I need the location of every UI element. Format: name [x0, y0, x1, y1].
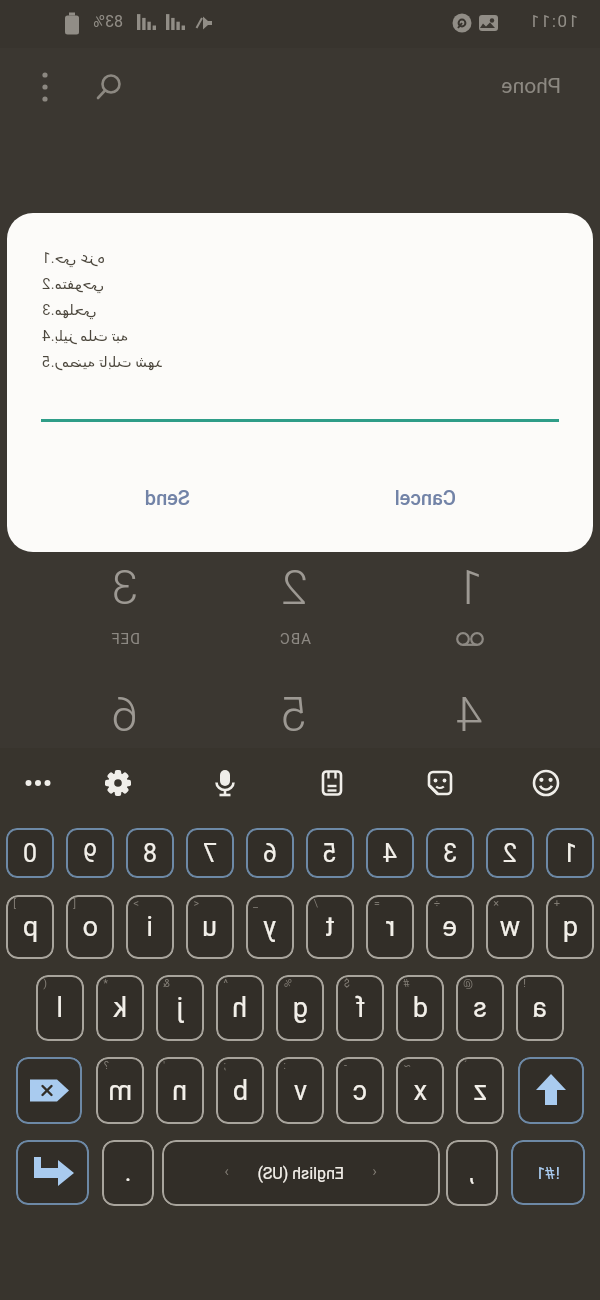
staticText: *: [103, 977, 108, 990]
staticText: 9: [82, 839, 97, 868]
button[interactable]: 3: [426, 828, 474, 878]
button[interactable]: 4: [366, 828, 414, 878]
staticText: m: [108, 1075, 132, 1107]
staticText: 4: [456, 686, 483, 742]
button[interactable]: 0: [6, 828, 54, 878]
staticText: DEF: [110, 630, 140, 648]
button[interactable]: 5: [306, 828, 354, 878]
staticText: 6: [262, 839, 277, 868]
button[interactable]: h: [216, 975, 264, 1041]
staticText: b: [232, 1075, 248, 1107]
staticText: .: [124, 1159, 131, 1187]
button[interactable]: !#1: [511, 1140, 585, 1205]
staticText: ]: [13, 897, 16, 910]
button[interactable]: j: [156, 975, 204, 1041]
staticText: 7: [202, 839, 217, 868]
button[interactable]: English (US): [162, 1140, 440, 1206]
button[interactable]: 1: [546, 828, 594, 878]
staticText: !#1: [535, 1163, 560, 1183]
button[interactable]: [14, 759, 62, 807]
staticText: ÷: [433, 897, 440, 910]
button[interactable]: .: [102, 1140, 154, 1206]
button[interactable]: n: [156, 1057, 204, 1124]
button[interactable]: u: [186, 895, 234, 959]
button[interactable]: r: [366, 895, 414, 959]
staticText: 5: [322, 839, 337, 868]
button[interactable]: [308, 759, 356, 807]
button[interactable]: 2: [486, 828, 534, 878]
staticText: $: [343, 977, 350, 990]
staticText: r: [385, 911, 395, 943]
button[interactable]: q: [546, 895, 594, 959]
button[interactable]: s: [456, 975, 504, 1041]
button[interactable]: l: [36, 975, 84, 1041]
button[interactable]: [30, 66, 60, 108]
staticText: Cancel: [394, 486, 456, 509]
staticText: ~: [403, 1059, 411, 1072]
button[interactable]: Send: [77, 468, 257, 526]
button[interactable]: [522, 759, 570, 807]
staticText: f: [355, 992, 365, 1024]
button[interactable]: [201, 759, 249, 807]
staticText: @: [463, 977, 473, 990]
button[interactable]: b: [216, 1057, 264, 1124]
staticText: t: [325, 911, 334, 943]
button[interactable]: [94, 759, 142, 807]
button[interactable]: d: [396, 975, 444, 1041]
staticText: ›: [224, 1162, 229, 1180]
staticText: j: [176, 992, 183, 1024]
button[interactable]: 7: [186, 828, 234, 878]
button[interactable]: [416, 759, 464, 807]
button[interactable]: m: [96, 1057, 144, 1124]
button[interactable]: c: [336, 1057, 384, 1124]
button[interactable]: o: [66, 895, 114, 959]
staticText: &: [163, 977, 170, 990]
staticText: 0: [22, 839, 37, 868]
staticText: /: [313, 897, 318, 910]
button[interactable]: x: [396, 1057, 444, 1124]
button[interactable]: [16, 1140, 89, 1205]
staticText: 2: [281, 559, 308, 615]
staticText: ': [163, 1059, 165, 1072]
button[interactable]: y: [246, 895, 294, 959]
staticText: English (US): [257, 1164, 344, 1183]
staticText: !: [523, 977, 526, 990]
button[interactable]: f: [336, 975, 384, 1041]
button[interactable]: [518, 1057, 584, 1124]
button[interactable]: e: [426, 895, 474, 959]
button[interactable]: a: [516, 975, 564, 1041]
staticText: y: [263, 911, 276, 943]
button[interactable]: 8: [126, 828, 174, 878]
button[interactable]: p: [6, 895, 54, 959]
staticText: `: [463, 1059, 467, 1072]
staticText: q: [562, 911, 578, 943]
staticText: a: [532, 992, 547, 1024]
staticText: e: [442, 911, 457, 943]
button[interactable]: [90, 68, 128, 106]
staticText: Phone: [501, 74, 561, 99]
button[interactable]: i: [126, 895, 174, 959]
button[interactable]: t: [306, 895, 354, 959]
button[interactable]: v: [276, 1057, 324, 1124]
staticText: 6: [111, 686, 138, 742]
button[interactable]: ,: [446, 1140, 498, 1206]
button[interactable]: 6: [246, 828, 294, 878]
button[interactable]: w: [486, 895, 534, 959]
staticText: >: [133, 897, 139, 910]
staticText: [: [73, 897, 76, 910]
staticText: ?: [103, 1059, 109, 1072]
staticText: Send: [144, 486, 190, 509]
button[interactable]: k: [96, 975, 144, 1041]
button[interactable]: z: [456, 1057, 504, 1124]
staticText: 3: [111, 559, 138, 615]
button[interactable]: g: [276, 975, 324, 1041]
button[interactable]: [16, 1057, 82, 1124]
staticText: ^: [223, 977, 228, 990]
staticText: d: [412, 992, 428, 1024]
staticText: 5: [281, 686, 308, 742]
staticText: 2: [502, 839, 517, 868]
staticText: x: [413, 1075, 427, 1107]
button[interactable]: 9: [66, 828, 114, 878]
button[interactable]: Cancel: [335, 468, 515, 526]
staticText: <: [193, 897, 199, 910]
